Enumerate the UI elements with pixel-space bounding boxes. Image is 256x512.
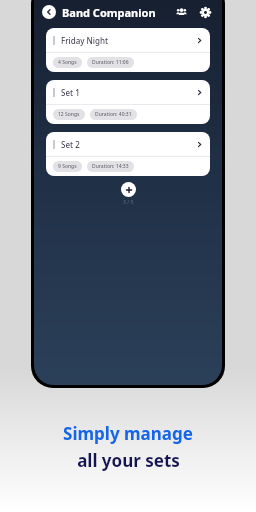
staticText: Set 1 xyxy=(61,87,80,98)
button[interactable]: Settings xyxy=(196,3,214,21)
staticText: all your sets xyxy=(77,449,180,472)
staticText: Band Companion xyxy=(62,5,156,20)
staticText: 9 Songs xyxy=(58,163,77,170)
staticText: Friday Night xyxy=(61,35,109,46)
button[interactable]: Friday Night xyxy=(46,28,210,72)
staticText: Duration: 14:33 xyxy=(92,163,129,170)
staticText: Duration: 40:31 xyxy=(95,111,132,118)
staticText: Simply manage xyxy=(63,422,193,445)
button[interactable]: Add set xyxy=(121,182,136,197)
button[interactable]: Back xyxy=(42,5,56,19)
staticText: 4 Songs xyxy=(58,59,77,66)
staticText: Set 2 xyxy=(61,139,80,150)
button[interactable]: Set 2 xyxy=(46,132,210,176)
staticText: 12 Songs xyxy=(58,111,80,118)
button[interactable]: Band members xyxy=(172,3,190,21)
staticText: Duration: 11:06 xyxy=(92,59,129,66)
button[interactable]: Set 1 xyxy=(46,80,210,124)
staticText: 3 / 5 xyxy=(123,199,134,206)
